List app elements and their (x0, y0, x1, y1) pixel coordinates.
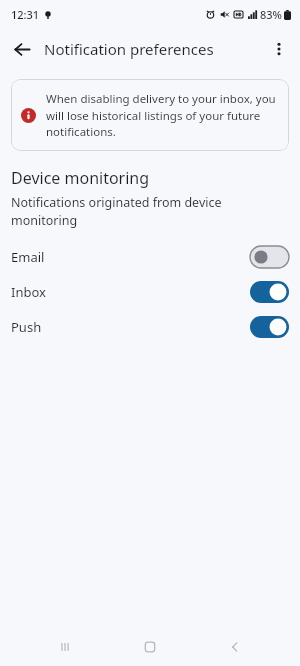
button[interactable]: Back (215, 628, 255, 666)
staticText: Device monitoring (11, 167, 150, 189)
button[interactable]: Push (0, 309, 300, 344)
staticText: Push (11, 318, 42, 336)
staticText: When disabling delivery to your inbox, y… (46, 91, 277, 139)
staticText: 83% (260, 7, 282, 22)
button[interactable]: Recent apps (45, 628, 85, 666)
staticText: Email (11, 248, 45, 266)
button[interactable]: Inbox (0, 274, 300, 309)
button[interactable]: Email (0, 239, 300, 274)
button[interactable]: More options (263, 33, 295, 65)
staticText: Inbox (11, 283, 46, 301)
button[interactable]: Back (6, 33, 38, 65)
staticText: Notifications originated from device mon… (11, 194, 289, 229)
staticText: 12:31 (11, 7, 40, 22)
button[interactable]: Home (130, 628, 170, 666)
staticText: Notification preferences (44, 39, 214, 59)
